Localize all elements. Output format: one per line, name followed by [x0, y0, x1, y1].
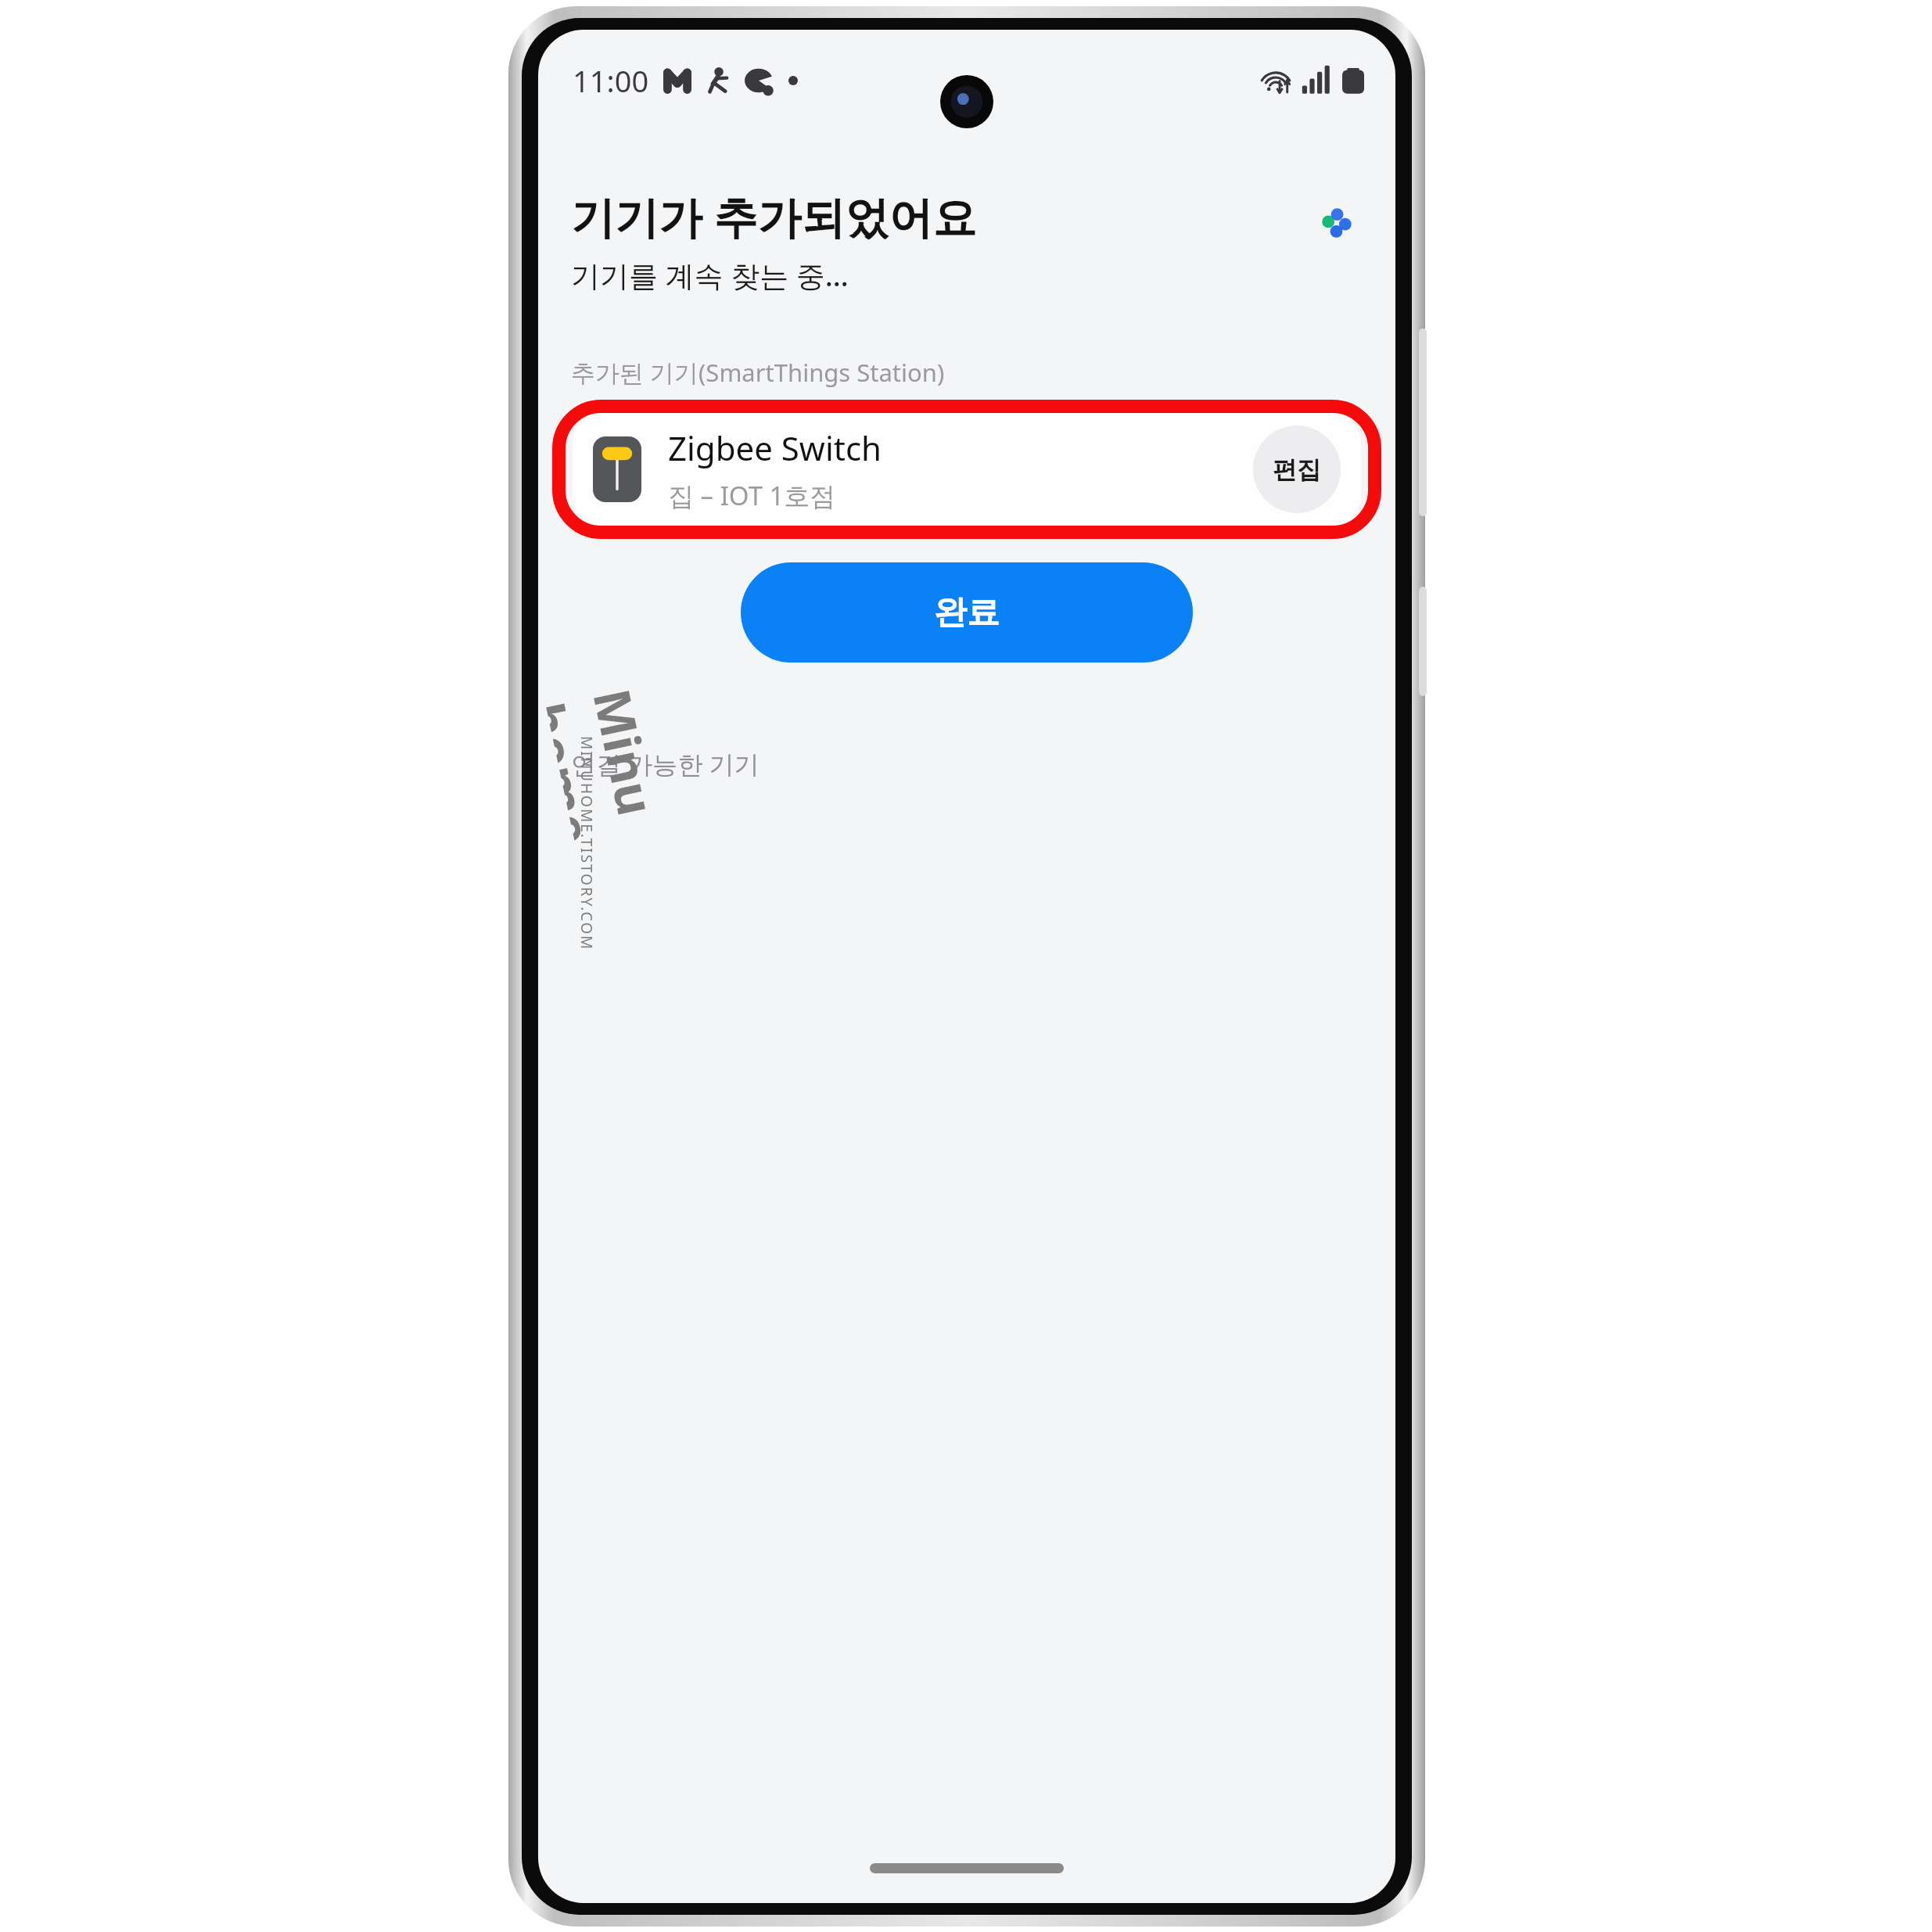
staticText: 편집 [1273, 454, 1321, 485]
button[interactable]: Matter devices [1311, 197, 1363, 249]
staticText: Zigbee Switch [668, 426, 882, 470]
staticText: 연결 가능한 기기 [571, 747, 760, 781]
button[interactable]: Zigbee Switch [573, 412, 1361, 526]
staticText: 11:00 [573, 60, 649, 101]
staticText: 기기가 추가되었어요 [571, 186, 977, 246]
button[interactable]: 완료 [741, 562, 1193, 663]
staticText: 추가된 기기(SmartThings Station) [571, 356, 945, 389]
staticText: MINUHOME.TISTORY.COM [576, 736, 597, 951]
button[interactable]: 편집 [1253, 426, 1341, 513]
staticText: Minu home [545, 683, 694, 933]
staticText: 완료 [934, 592, 1000, 634]
staticText: 집 – IOT 1호점 [668, 478, 836, 513]
staticText: 기기를 계속 찾는 중… [571, 255, 849, 295]
